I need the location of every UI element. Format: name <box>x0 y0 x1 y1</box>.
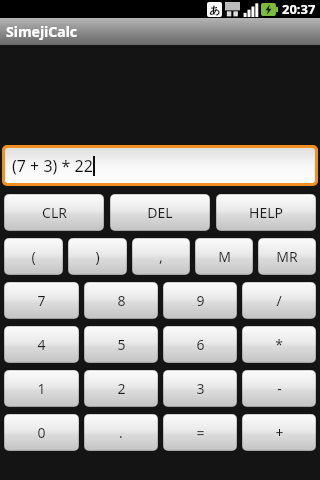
staticText: 3 <box>196 379 205 398</box>
staticText: HELP <box>249 203 283 222</box>
staticText: = <box>196 423 205 442</box>
button[interactable]: M <box>195 238 253 275</box>
staticText: . <box>119 423 123 442</box>
staticText: 4 <box>37 335 46 354</box>
staticText: + <box>275 423 284 442</box>
button[interactable]: 0 <box>4 414 79 451</box>
staticText: ) <box>95 247 100 266</box>
staticText: MR <box>276 247 298 266</box>
staticText: 20:37 <box>282 0 316 18</box>
button[interactable]: MR <box>258 238 316 275</box>
button[interactable]: DEL <box>110 194 210 231</box>
button[interactable]: 5 <box>84 326 158 363</box>
staticText: * <box>275 335 283 354</box>
button[interactable]: . <box>84 414 158 451</box>
button[interactable]: 3 <box>163 370 237 407</box>
button[interactable]: * <box>242 326 316 363</box>
button[interactable]: (7 + 3) * 22 <box>5 148 315 183</box>
staticText: 9 <box>196 291 205 310</box>
staticText: , <box>159 247 163 266</box>
staticText: (7 + 3) * 22 <box>12 155 93 177</box>
button[interactable]: 2 <box>84 370 158 407</box>
staticText: 1 <box>37 379 46 398</box>
staticText: 0 <box>37 423 46 442</box>
button[interactable]: ( <box>4 238 63 275</box>
staticText: あ <box>209 3 221 17</box>
button[interactable]: HELP <box>216 194 316 231</box>
button[interactable]: ) <box>68 238 127 275</box>
button[interactable]: = <box>163 414 237 451</box>
button[interactable]: 7 <box>4 282 79 319</box>
button[interactable]: 9 <box>163 282 237 319</box>
staticText: 5 <box>117 335 126 354</box>
staticText: M <box>218 247 231 266</box>
button[interactable]: 4 <box>4 326 79 363</box>
staticText: CLR <box>42 203 67 222</box>
staticText: 6 <box>196 335 205 354</box>
button[interactable]: - <box>242 370 316 407</box>
staticText: 2 <box>117 379 126 398</box>
staticText: ( <box>31 247 36 266</box>
button[interactable]: , <box>132 238 190 275</box>
button[interactable]: + <box>242 414 316 451</box>
staticText: SimejiCalc <box>6 22 78 41</box>
staticText: DEL <box>147 203 173 222</box>
button[interactable]: / <box>242 282 316 319</box>
staticText: 8 <box>117 291 126 310</box>
staticText: - <box>277 379 282 398</box>
staticText: 7 <box>37 291 46 310</box>
button[interactable]: 1 <box>4 370 79 407</box>
button[interactable]: 6 <box>163 326 237 363</box>
button[interactable]: CLR <box>4 194 104 231</box>
button[interactable]: 8 <box>84 282 158 319</box>
staticText: / <box>276 291 282 310</box>
